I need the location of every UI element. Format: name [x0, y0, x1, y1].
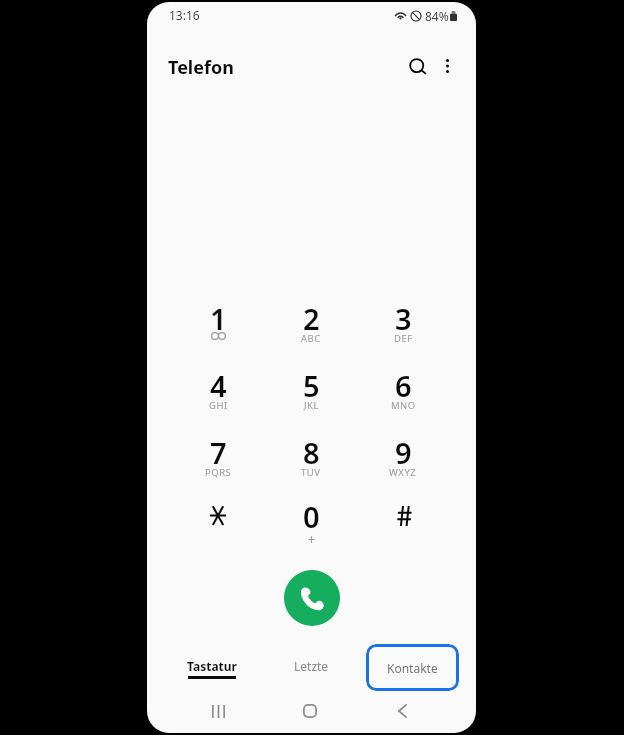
button[interactable]: Kontakte [366, 644, 459, 691]
staticText: 8 [303, 433, 320, 472]
button[interactable]: 6 [357, 369, 449, 433]
button[interactable]: Call [284, 570, 340, 626]
staticText: MNO [391, 399, 416, 412]
staticText: JKL [304, 399, 319, 412]
staticText: Kontakte [387, 660, 438, 676]
staticText: 4 [210, 366, 227, 405]
staticText: WXYZ [389, 466, 417, 479]
staticText: 9 [395, 433, 412, 472]
staticText: 84% [425, 8, 449, 24]
staticText: Telefon [168, 55, 234, 80]
button[interactable]: 1 [172, 302, 264, 366]
staticText: 7 [210, 433, 227, 472]
button[interactable]: Back [383, 697, 421, 725]
staticText: Tastatur [187, 658, 237, 674]
button[interactable] [172, 500, 264, 564]
button[interactable]: Tastatur [165, 647, 258, 693]
staticText: Letzte [294, 658, 329, 674]
button[interactable] [357, 500, 449, 564]
staticText: ABC [301, 332, 321, 345]
button[interactable]: Letzte [265, 647, 358, 693]
staticText: 1 [210, 299, 227, 338]
staticText: PQRS [205, 466, 232, 479]
button[interactable]: 8 [265, 436, 357, 500]
staticText: 5 [303, 366, 320, 405]
button[interactable]: Search [401, 49, 435, 83]
staticText: 13:16 [169, 7, 200, 23]
staticText: TUV [301, 466, 321, 479]
button[interactable]: 3 [357, 302, 449, 366]
button[interactable]: 2 [265, 302, 357, 366]
staticText: 3 [395, 299, 412, 338]
button[interactable]: Recent apps [199, 697, 237, 725]
staticText: DEF [394, 332, 413, 345]
staticText: 2 [303, 299, 320, 338]
staticText: 6 [395, 366, 412, 405]
button[interactable]: 4 [172, 369, 264, 433]
button[interactable]: More options [430, 49, 464, 83]
staticText: GHI [209, 399, 228, 412]
button[interactable]: 5 [265, 369, 357, 433]
button[interactable]: 0 [265, 500, 357, 564]
button[interactable]: 7 [172, 436, 264, 500]
button[interactable]: Home [291, 697, 329, 725]
staticText: 0 [303, 497, 320, 536]
button[interactable]: 9 [357, 436, 449, 500]
